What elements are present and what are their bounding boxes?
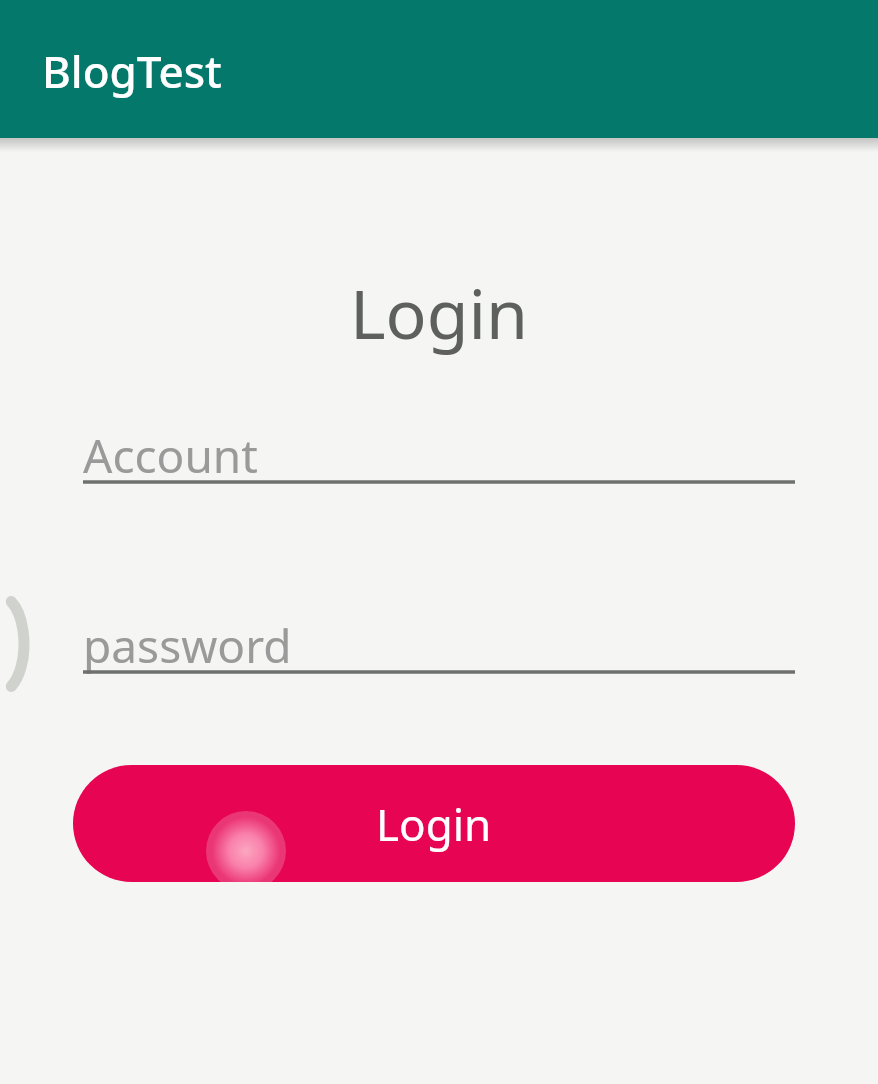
staticText: Account xyxy=(83,424,258,484)
button[interactable]: Login xyxy=(73,765,795,882)
staticText: password xyxy=(83,614,292,674)
staticText: Login xyxy=(376,794,492,854)
staticText: Login xyxy=(0,266,878,359)
staticText: BlogTest xyxy=(42,41,222,101)
button[interactable]: Account input field xyxy=(83,424,795,484)
button[interactable]: Password input field xyxy=(83,614,795,674)
